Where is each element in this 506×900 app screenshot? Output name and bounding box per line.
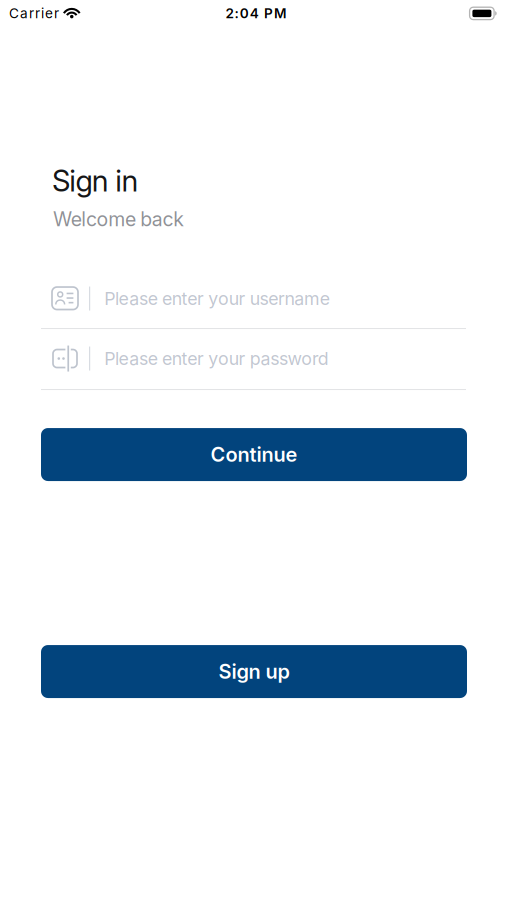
staticText: r	[29, 5, 34, 21]
staticText: C	[9, 5, 19, 21]
staticText: M	[274, 5, 287, 21]
button[interactable]: Please enter your username	[0, 285, 506, 312]
staticText: :	[235, 5, 239, 21]
staticText: a	[20, 5, 28, 21]
staticText: i	[41, 5, 44, 21]
staticText: Sign in	[52, 163, 138, 198]
staticText: P	[264, 5, 273, 21]
button[interactable]: Continue	[0, 428, 506, 481]
staticText: r	[35, 5, 40, 21]
staticText: 2	[225, 5, 233, 21]
button[interactable]: Please enter your password	[0, 345, 506, 372]
button[interactable]: Sign up	[0, 645, 506, 698]
staticText: 0	[240, 5, 249, 21]
staticText: Continue	[210, 442, 297, 467]
staticText: 4	[250, 5, 259, 21]
staticText: Please enter your password	[104, 348, 329, 369]
staticText: e	[45, 5, 53, 21]
staticText: Please enter your username	[104, 288, 330, 309]
staticText: Welcome back	[53, 207, 184, 231]
staticText: r	[54, 5, 59, 21]
staticText: Sign up	[218, 659, 289, 684]
